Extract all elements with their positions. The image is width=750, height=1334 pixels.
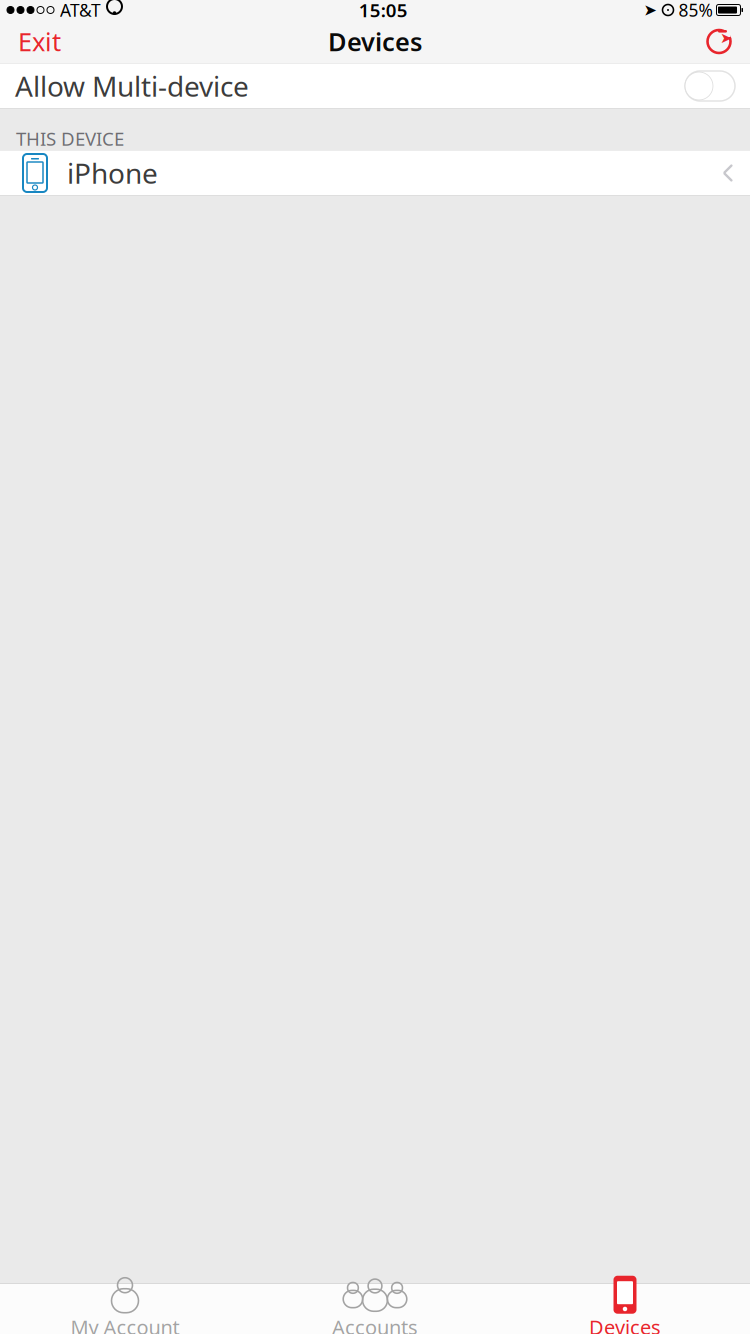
staticText: 85%	[678, 0, 712, 21]
button[interactable]: iPhone	[0, 150, 750, 195]
button[interactable]: Exit	[8, 17, 71, 66]
staticText: Devices	[589, 1314, 661, 1334]
staticText: Accounts	[332, 1314, 418, 1334]
staticText: ➤	[720, 29, 732, 46]
staticText: Devices	[328, 25, 422, 58]
staticText: THIS DEVICE	[16, 126, 124, 151]
staticText: 15:05	[359, 0, 408, 22]
button[interactable]: Allow Multi-device	[685, 71, 735, 101]
staticText: ➤	[643, 1, 656, 19]
staticText: Exit	[18, 25, 61, 58]
staticText: Allow Multi-device	[15, 67, 249, 105]
button[interactable]: Refresh	[696, 21, 742, 61]
staticText: My Account	[70, 1314, 179, 1334]
button[interactable]: My Account	[0, 1284, 250, 1334]
button[interactable]: Accounts	[250, 1284, 500, 1334]
button[interactable]: Devices	[500, 1284, 750, 1334]
staticText: AT&T	[60, 0, 101, 21]
staticText: iPhone	[67, 154, 158, 192]
